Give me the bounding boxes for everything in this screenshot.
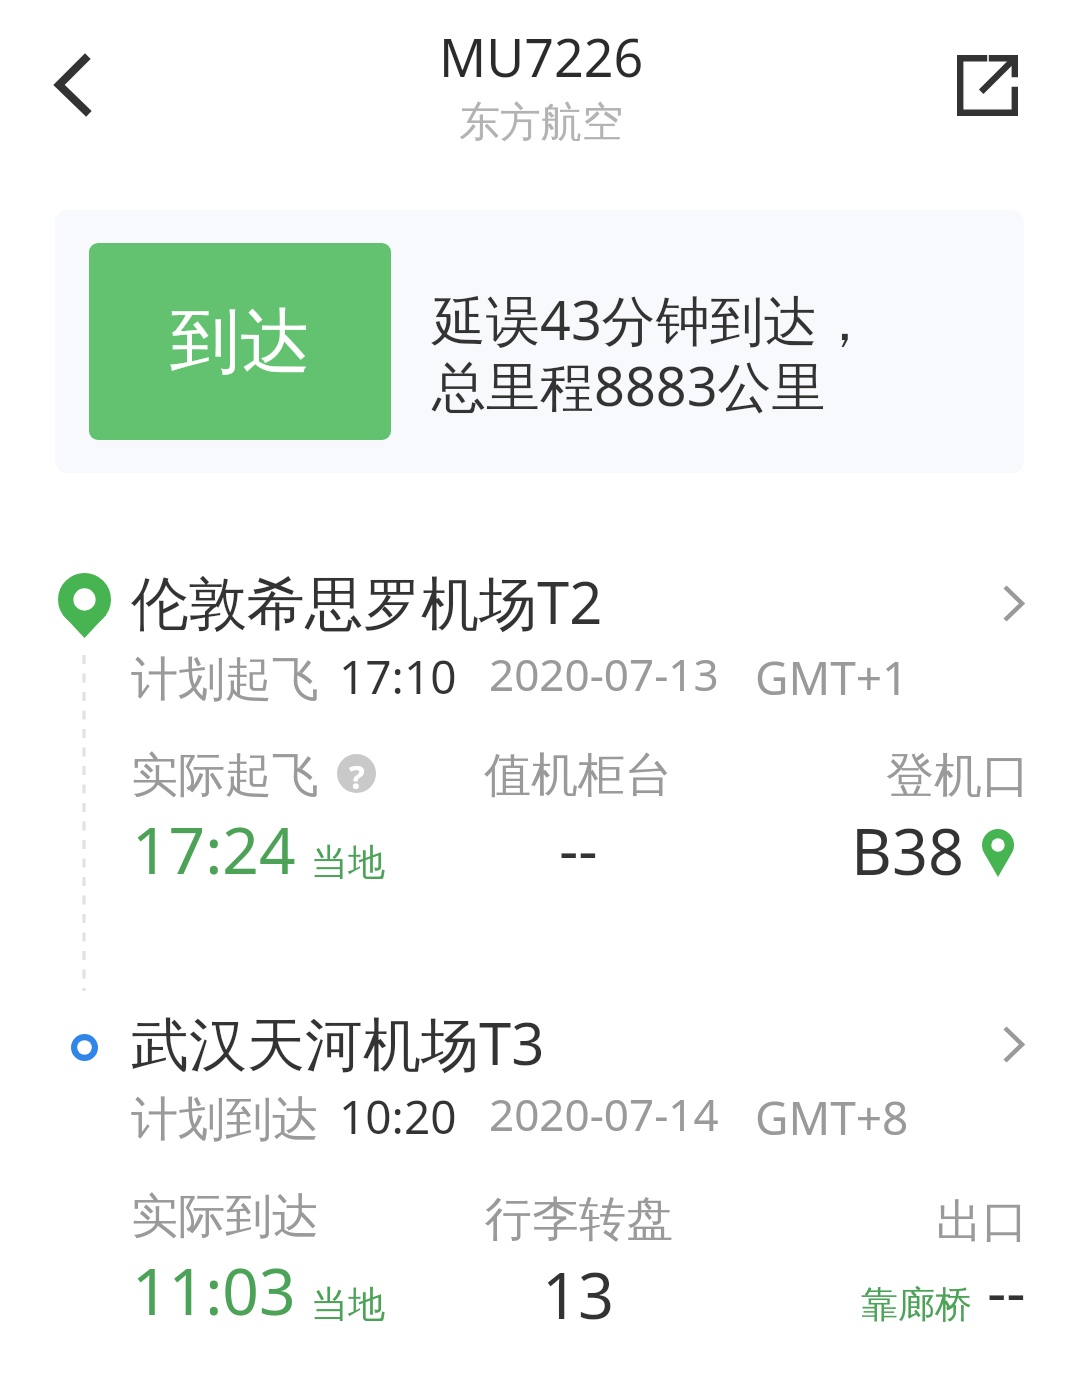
button[interactable]: Back <box>14 30 124 140</box>
staticText: 延误43分钟到达， <box>432 282 872 356</box>
staticText: 10:20 <box>339 1085 457 1148</box>
staticText: GMT+1 <box>755 646 909 709</box>
staticText: 2020-07-13 <box>489 644 719 704</box>
staticText: 登机口 <box>886 746 1030 806</box>
staticText: 东方航空 <box>459 97 623 149</box>
staticText: 计划起飞 <box>131 650 319 709</box>
staticText: 17:24 <box>132 806 296 893</box>
staticText: 伦敦希思罗机场T2 <box>131 562 603 641</box>
staticText: 靠廊桥 <box>861 1281 972 1328</box>
staticText: 当地 <box>311 839 385 886</box>
staticText: 实际起飞 <box>131 746 319 805</box>
button[interactable]: Share <box>941 39 1034 132</box>
staticText: GMT+8 <box>755 1086 909 1149</box>
staticText: 13 <box>542 1252 615 1338</box>
button[interactable]: 到达 <box>55 210 1024 473</box>
staticText: 实际到达 <box>131 1187 319 1246</box>
staticText: 值机柜台 <box>484 746 672 805</box>
staticText: 当地 <box>311 1281 385 1328</box>
staticText: 11:03 <box>132 1247 296 1334</box>
button[interactable]: 武汉天河机场T3 <box>0 997 1079 1337</box>
staticText: MU7226 <box>439 21 644 92</box>
staticText: 到达 <box>170 298 310 386</box>
button[interactable]: Help <box>337 754 376 793</box>
staticText: 17:10 <box>339 645 457 708</box>
staticText: 出口 <box>936 1193 1028 1251</box>
staticText: 行李转盘 <box>485 1190 673 1249</box>
staticText: -- <box>987 1250 1026 1332</box>
staticText: ? <box>349 754 365 793</box>
staticText: 2020-07-14 <box>489 1084 719 1144</box>
staticText: 计划到达 <box>131 1090 319 1149</box>
staticText: -- <box>559 808 598 890</box>
button[interactable]: 伦敦希思罗机场T2 <box>0 556 1079 896</box>
staticText: 武汉天河机场T3 <box>131 1003 545 1082</box>
staticText: B38 <box>851 808 965 894</box>
staticText: 总里程8883公里 <box>432 348 826 422</box>
